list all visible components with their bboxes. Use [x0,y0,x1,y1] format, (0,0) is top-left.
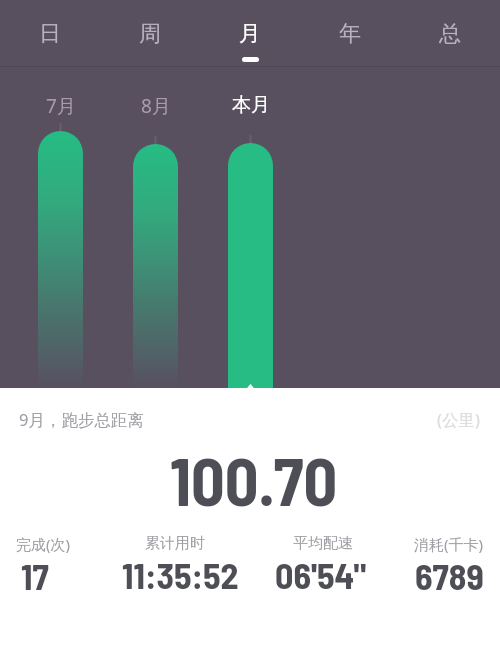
button[interactable] [228,116,273,388]
staticText: 周 [139,20,161,48]
button[interactable]: 消耗(千卡) [414,534,484,597]
button[interactable]: 8月 [133,93,178,115]
button[interactable]: 完成(次) [16,534,71,597]
staticText: 11:35:52 [122,553,239,596]
button[interactable] [38,116,83,388]
staticText: 月 [239,20,261,48]
button[interactable]: 7月 [38,93,83,115]
button[interactable]: 平均配速 [277,534,369,596]
button[interactable] [133,116,178,388]
button[interactable]: 本月 [228,93,273,115]
button[interactable]: 日 [0,0,100,66]
staticText: 日 [39,20,61,48]
button[interactable]: 月 [200,0,300,66]
staticText: 总 [439,20,461,48]
staticText: 完成(次) [16,534,71,554]
staticText: 100.70 [170,440,338,519]
staticText: 平均配速 [293,534,353,553]
button[interactable]: 周 [100,0,200,66]
staticText: 17 [21,554,49,597]
staticText: 6789 [415,554,484,597]
staticText: 8月 [141,93,171,115]
button[interactable]: 总 [400,0,500,66]
button[interactable]: 累计用时 [116,534,233,596]
button[interactable]: 年 [300,0,400,66]
staticText: 累计用时 [145,534,205,553]
staticText: 本月 [232,93,270,115]
staticText: 06'54" [275,553,367,596]
staticText: 消耗(千卡) [414,534,484,554]
staticText: 9月，跑步总距离 [19,408,144,431]
staticText: 年 [339,20,361,48]
staticText: 7月 [46,93,76,115]
staticText: (公里) [437,408,480,431]
